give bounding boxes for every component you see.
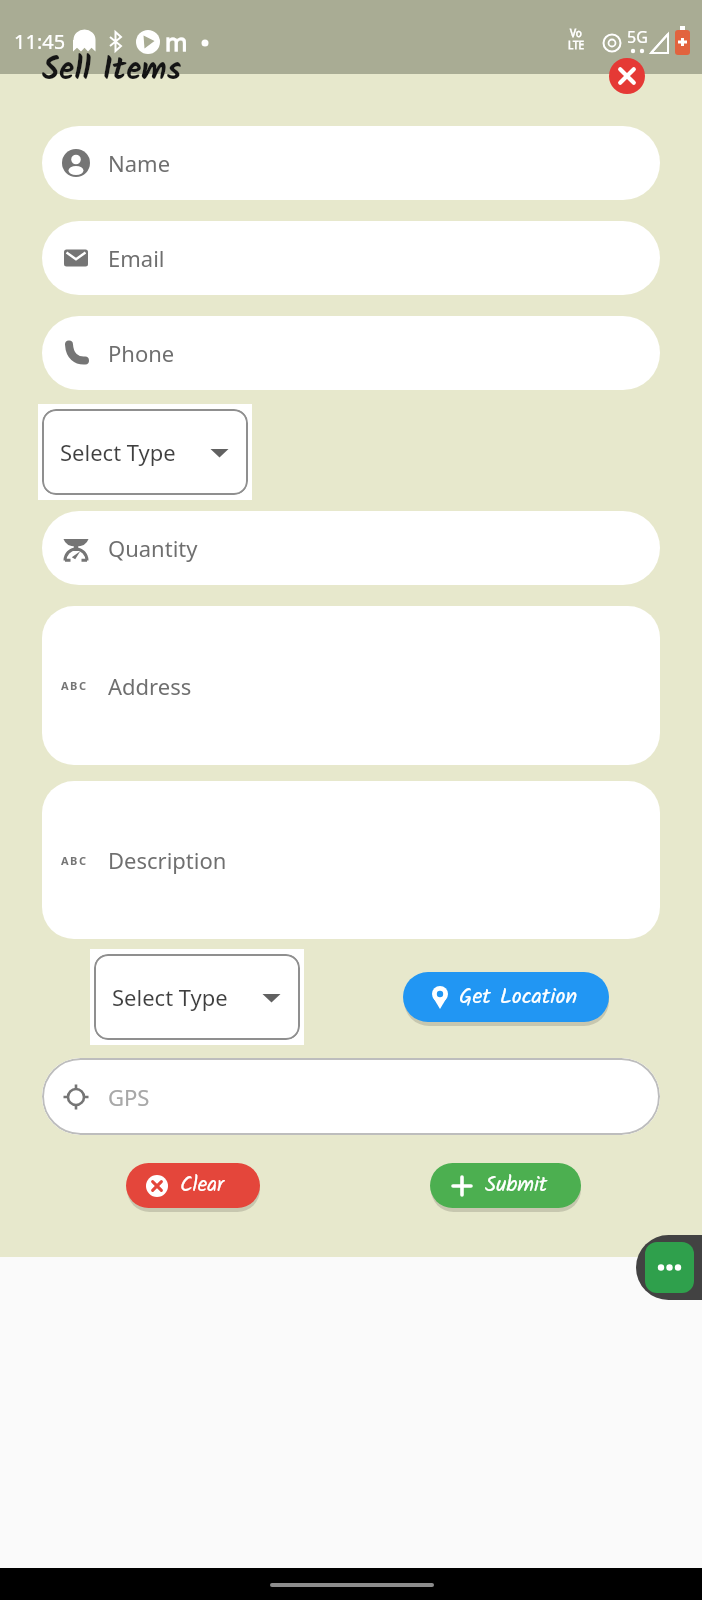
button[interactable]: Email — [42, 221, 660, 295]
button[interactable]: Name — [42, 126, 660, 200]
staticText: Description — [108, 845, 227, 875]
staticText: Select Type — [60, 437, 176, 467]
button[interactable] — [636, 1235, 702, 1300]
staticText: Select Type — [112, 982, 228, 1012]
button[interactable]: Get Location — [403, 972, 609, 1022]
staticText: m — [165, 25, 188, 58]
staticText: Submit — [485, 1169, 548, 1202]
button[interactable]: Quantity — [42, 511, 660, 585]
button[interactable]: Select Type — [94, 954, 300, 1040]
button[interactable] — [609, 58, 645, 94]
staticText: Vo — [570, 26, 582, 40]
button[interactable]: Phone — [42, 316, 660, 390]
staticText: Sell Items — [42, 46, 182, 95]
staticText: ABC — [61, 678, 88, 693]
staticText: Name — [108, 148, 171, 178]
button[interactable]: GPS — [42, 1058, 660, 1135]
staticText: Address — [108, 671, 192, 701]
staticText: ABC — [61, 853, 88, 868]
staticText: 11:45 — [14, 28, 66, 55]
staticText: LTE — [568, 38, 585, 52]
staticText: Phone — [108, 338, 175, 368]
staticText: 5G — [627, 26, 648, 48]
button[interactable]: ABC — [42, 606, 660, 765]
button[interactable]: ABC — [42, 781, 660, 939]
staticText: Email — [108, 243, 165, 273]
staticText: Get Location — [459, 980, 578, 1015]
button[interactable]: Select Type — [42, 409, 248, 495]
staticText: Clear — [180, 1169, 224, 1202]
staticText: GPS — [108, 1082, 150, 1112]
button[interactable]: Clear — [126, 1163, 260, 1208]
staticText: Quantity — [108, 533, 198, 563]
button[interactable]: Submit — [430, 1163, 581, 1208]
